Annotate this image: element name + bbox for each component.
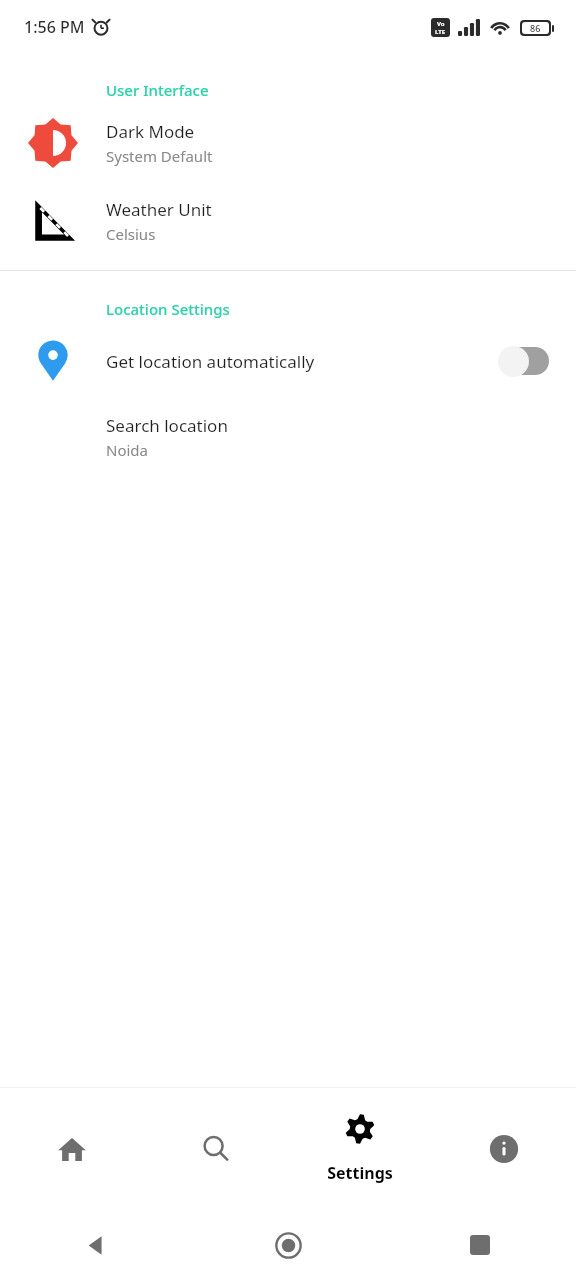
button[interactable]: Search location bbox=[0, 399, 576, 475]
staticText: 86 bbox=[530, 22, 541, 34]
button[interactable]: Home bbox=[192, 1210, 384, 1280]
button[interactable]: Recents bbox=[384, 1210, 576, 1280]
button[interactable]: Get location automatically toggle bbox=[498, 344, 552, 378]
staticText: Get location automatically bbox=[106, 350, 498, 373]
staticText: Settings bbox=[327, 1162, 393, 1184]
button[interactable]: Search bbox=[144, 1088, 288, 1210]
button[interactable]: Settings bbox=[288, 1088, 432, 1210]
staticText: Noida bbox=[106, 440, 148, 460]
staticText: System Default bbox=[106, 146, 213, 166]
button[interactable]: Location bbox=[0, 323, 576, 399]
staticText: 1:56 PM bbox=[24, 16, 85, 38]
staticText: Vo bbox=[437, 20, 445, 28]
button[interactable]: Home bbox=[0, 1088, 144, 1210]
other: Dark mode bbox=[28, 118, 78, 168]
staticText: User Interface bbox=[106, 80, 209, 100]
button[interactable]: Back bbox=[0, 1210, 192, 1280]
staticText: Celsius bbox=[106, 224, 156, 244]
staticText: Search location bbox=[106, 414, 228, 437]
other: Weather unit bbox=[29, 197, 77, 245]
staticText: LTE bbox=[435, 28, 446, 36]
button[interactable]: Info bbox=[432, 1088, 576, 1210]
staticText: Weather Unit bbox=[106, 198, 212, 221]
other: Location bbox=[32, 340, 74, 382]
button[interactable]: Dark mode bbox=[0, 104, 576, 182]
staticText: Dark Mode bbox=[106, 120, 195, 143]
staticText: Location Settings bbox=[106, 299, 230, 319]
button[interactable]: Weather unit bbox=[0, 182, 576, 260]
